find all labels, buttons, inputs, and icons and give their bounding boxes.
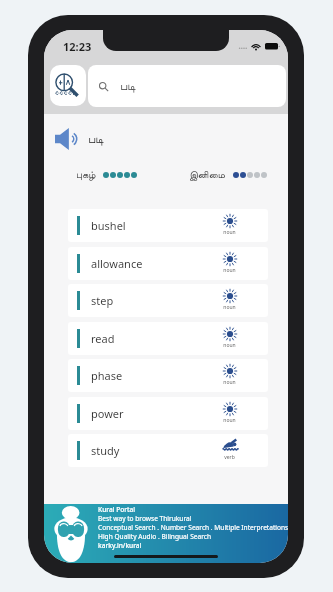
- staticText: noun: [223, 267, 236, 274]
- button[interactable]: allowance: [68, 247, 268, 280]
- button[interactable]: phase: [68, 359, 268, 392]
- button[interactable]: படி: [88, 65, 286, 107]
- staticText: புகழ்: [76, 170, 96, 180]
- button[interactable]: Kural app logo: [50, 65, 86, 106]
- button[interactable]: Play pronunciation: [55, 128, 77, 150]
- staticText: noun: [223, 342, 236, 349]
- staticText: noun: [223, 229, 236, 236]
- staticText: allowance: [91, 256, 143, 271]
- button[interactable]: step: [68, 284, 268, 317]
- staticText: phase: [91, 368, 123, 383]
- button[interactable]: study: [68, 434, 268, 467]
- staticText: High Quality Audio . Bilingual Search: [98, 532, 212, 541]
- staticText: noun: [223, 417, 236, 424]
- button[interactable]: Kural Portal: [44, 504, 288, 563]
- staticText: power: [91, 406, 124, 421]
- staticText: step: [91, 293, 114, 308]
- staticText: படி: [88, 133, 104, 145]
- staticText: read: [91, 331, 115, 346]
- staticText: verb: [224, 454, 235, 461]
- staticText: noun: [223, 304, 236, 311]
- button[interactable]: bushel: [68, 209, 268, 242]
- staticText: noun: [223, 379, 236, 386]
- staticText: Best way to browse Thirukural: [98, 514, 192, 523]
- button[interactable]: power: [68, 397, 268, 430]
- staticText: Conceptual Search . Number Search . Mult…: [98, 523, 288, 532]
- staticText: படி: [120, 80, 136, 92]
- staticText: karky.in/kural: [98, 541, 142, 550]
- staticText: Kural Portal: [98, 505, 136, 514]
- button[interactable]: read: [68, 322, 268, 355]
- staticText: 12:23: [63, 39, 92, 54]
- staticText: இனிமை: [189, 170, 225, 180]
- staticText: bushel: [91, 218, 126, 233]
- staticText: study: [91, 443, 120, 458]
